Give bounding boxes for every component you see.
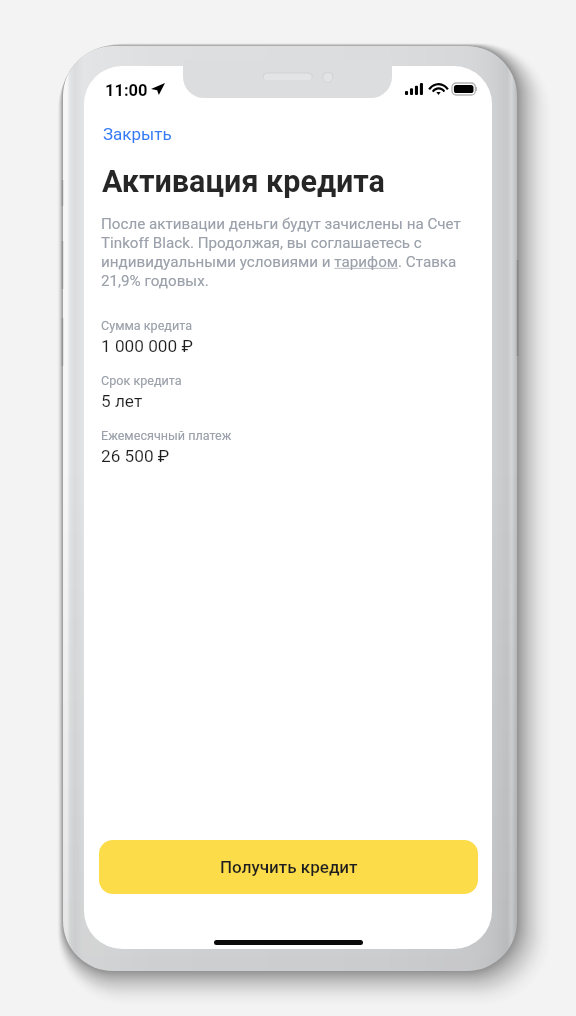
staticText: Ежемесячный платеж — [101, 428, 232, 443]
button[interactable]: Получить кредит — [99, 840, 478, 894]
staticText: 5 лет — [101, 391, 143, 411]
staticText: Закрыть — [103, 124, 172, 144]
staticText: 1 000 000 ₽ — [101, 336, 193, 356]
button[interactable]: Закрыть — [97, 120, 178, 148]
staticText: После активации деньги будут зачислены н… — [101, 215, 484, 289]
staticText: Получить кредит — [220, 857, 358, 877]
staticText: Активация кредита — [102, 164, 385, 200]
staticText: 11:00 — [105, 81, 148, 100]
staticText: Срок кредита — [101, 373, 182, 388]
staticText: 26 500 ₽ — [101, 446, 170, 466]
staticText: Сумма кредита — [101, 318, 193, 333]
